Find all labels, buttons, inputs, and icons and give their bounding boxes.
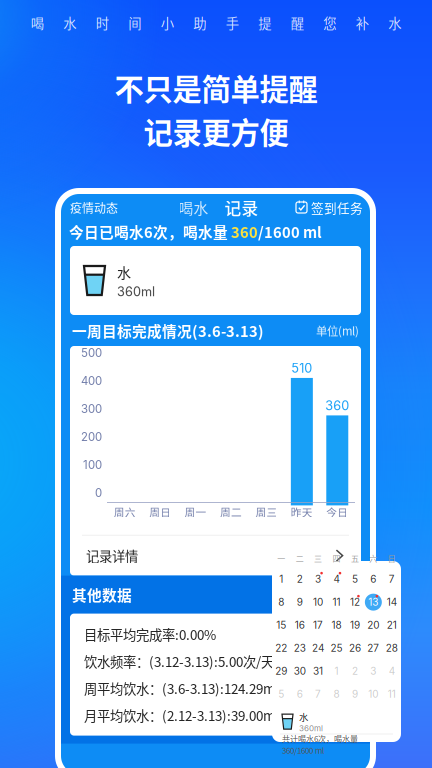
staticText: 周一: [185, 504, 207, 519]
button[interactable]: 签到任务: [296, 198, 363, 217]
staticText: 5: [278, 688, 284, 700]
staticText: 其他数据: [72, 584, 132, 605]
staticText: 周六: [114, 504, 136, 519]
staticText: 7: [315, 688, 321, 700]
staticText: 10: [368, 688, 378, 700]
button[interactable]: 疫情动态: [70, 199, 118, 216]
staticText: 喝水: [178, 197, 208, 218]
staticText: 疫情动态: [70, 199, 118, 216]
staticText: 水: [117, 262, 131, 282]
staticText: 360: [325, 398, 349, 413]
staticText: 12: [350, 596, 360, 608]
staticText: 周日: [149, 504, 171, 519]
staticText: 五: [351, 552, 359, 564]
staticText: 25: [330, 642, 342, 654]
staticText: 共计喝水6次，喝水量 360/1600 ml: [282, 733, 358, 756]
staticText: 1: [334, 665, 338, 677]
staticText: 记录更方便: [143, 110, 288, 152]
staticText: 26: [349, 642, 361, 654]
staticText: 19: [350, 619, 360, 631]
staticText: 9: [297, 596, 303, 608]
staticText: 360: [231, 221, 258, 242]
staticText: 400: [81, 374, 102, 388]
staticText: 200: [81, 430, 102, 444]
staticText: 一: [277, 552, 285, 564]
staticText: 510: [291, 361, 312, 376]
staticText: 三: [314, 552, 322, 564]
staticText: 360ml: [117, 284, 155, 299]
staticText: 昨天: [291, 504, 313, 519]
staticText: 8: [333, 688, 339, 700]
staticText: 21: [387, 619, 397, 631]
staticText: 二: [296, 552, 304, 564]
staticText: 1: [279, 573, 283, 585]
staticText: 16: [295, 619, 305, 631]
staticText: 23: [294, 642, 306, 654]
button[interactable]: 喝水: [178, 197, 208, 218]
staticText: 300: [81, 402, 102, 416]
staticText: 5: [352, 573, 358, 585]
staticText: 4: [389, 665, 395, 677]
button[interactable]: 记录: [224, 195, 258, 219]
staticText: 目标平均完成率:0.00%: [84, 624, 216, 644]
staticText: 14: [387, 596, 397, 608]
staticText: 喝水时间小助手提醒您补水: [31, 13, 401, 32]
staticText: 签到任务: [311, 198, 363, 217]
staticText: 3: [370, 665, 376, 677]
staticText: 18: [331, 619, 341, 631]
staticText: 100: [83, 458, 102, 472]
staticText: 记录详情: [86, 546, 138, 565]
staticText: 饮水频率：(3.12-3.13):5.00次/天: [84, 651, 274, 671]
staticText: 0: [95, 486, 102, 500]
staticText: 单位(ml): [316, 322, 359, 339]
staticText: 8: [278, 596, 284, 608]
staticText: 27: [367, 642, 379, 654]
staticText: 今日已喝水6次，喝水量: [69, 221, 231, 242]
staticText: /1600 ml: [258, 221, 322, 242]
staticText: 3: [315, 573, 321, 585]
staticText: 24: [312, 642, 324, 654]
staticText: 6: [370, 573, 376, 585]
button[interactable]: 记录详情: [70, 536, 361, 576]
staticText: 2: [352, 665, 358, 677]
staticText: 17: [313, 619, 323, 631]
staticText: 四: [332, 552, 340, 564]
staticText: 28: [386, 642, 398, 654]
staticText: 6: [297, 688, 303, 700]
staticText: 360ml: [299, 724, 323, 733]
staticText: 不只是简单提醒: [114, 66, 317, 109]
staticText: 周三: [255, 504, 277, 519]
staticText: 周平均饮水：(3.6-3.13):124.29ml/天: [84, 678, 297, 698]
staticText: 9: [352, 688, 358, 700]
staticText: 29: [275, 665, 287, 677]
staticText: 13: [368, 596, 378, 608]
staticText: 31: [313, 665, 323, 677]
staticText: 30: [294, 665, 306, 677]
staticText: 4: [333, 573, 339, 585]
staticText: 2: [297, 573, 303, 585]
staticText: 水: [299, 710, 308, 724]
staticText: 六: [369, 552, 377, 564]
staticText: 20: [367, 619, 379, 631]
staticText: 今日: [326, 504, 348, 519]
staticText: 10: [313, 596, 323, 608]
staticText: 7: [389, 573, 395, 585]
staticText: 记录: [224, 195, 258, 219]
staticText: 15: [276, 619, 286, 631]
staticText: 11: [332, 596, 340, 608]
staticText: 月平均饮水：(2.12-3.13):39.00ml/天: [84, 705, 297, 725]
staticText: 周二: [220, 504, 242, 519]
staticText: 11: [388, 688, 396, 700]
staticText: 一周目标完成情况(3.6-3.13): [72, 320, 264, 341]
staticText: 日: [388, 552, 396, 564]
staticText: 500: [81, 346, 102, 360]
staticText: 22: [275, 642, 287, 654]
